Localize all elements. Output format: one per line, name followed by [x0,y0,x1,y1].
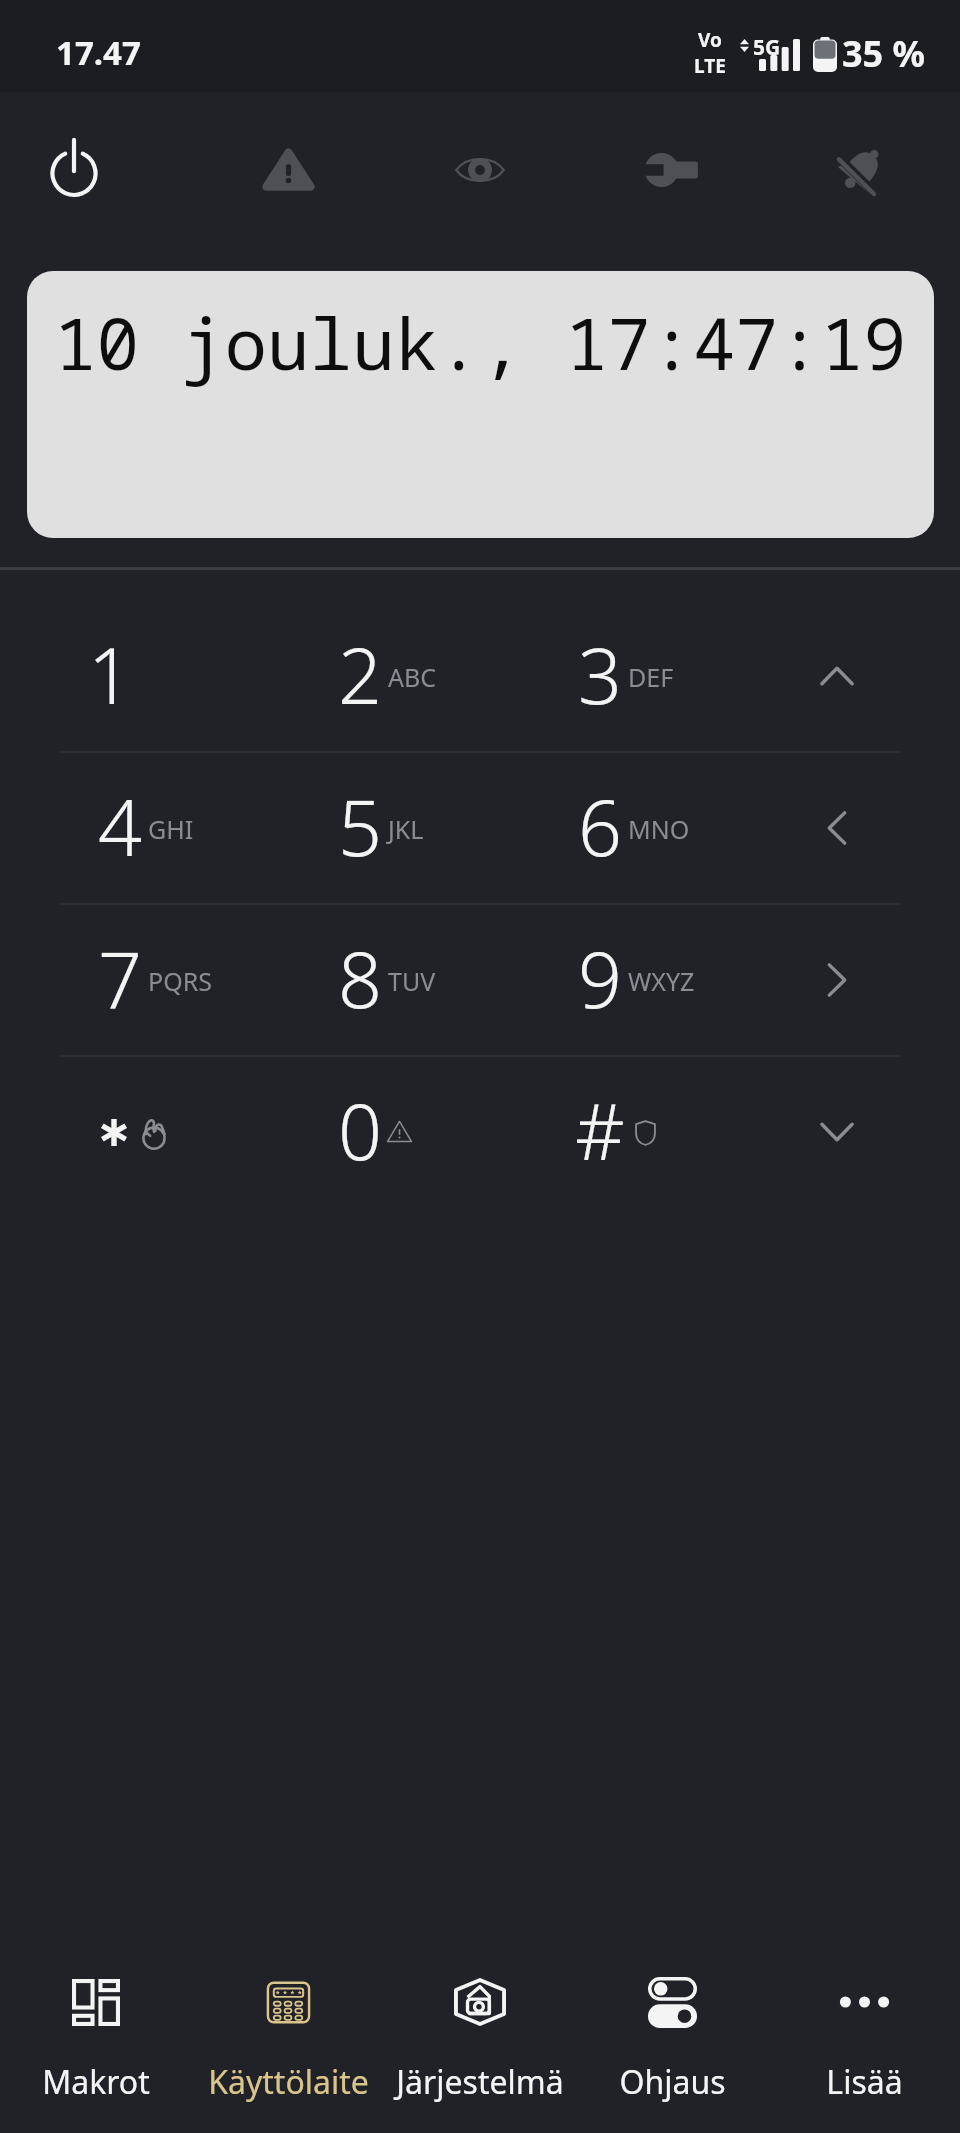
staticText: Vo [698,27,722,53]
button[interactable]: Move left [720,752,960,904]
button[interactable]: Move right [720,904,960,1056]
button[interactable]: Käyttölaite [192,1945,384,2115]
button[interactable]: # [480,1056,720,1208]
button[interactable]: 6 [480,752,720,904]
staticText: 10 jouluk., 17:47:19 [54,294,907,391]
staticText: 35 % [842,29,926,78]
button[interactable]: 9 [480,904,720,1056]
staticText: 4 [98,774,142,879]
staticText: ABC [388,660,437,694]
button[interactable]: 1 [0,600,240,752]
button[interactable]: 5 [240,752,480,904]
button[interactable]: 0 [240,1056,480,1208]
staticText: # [575,1078,625,1183]
staticText: 3 [578,622,622,727]
button[interactable]: Scroll down [720,1056,960,1208]
button[interactable]: Notifications off [815,122,911,218]
staticText: LTE [694,53,726,79]
button[interactable]: Warnings [240,122,336,218]
staticText: 6 [578,774,622,879]
staticText: Makrot [42,2060,150,2104]
button[interactable]: Makrot [0,1945,192,2115]
staticText: DEF [628,660,674,694]
staticText: Järjestelmä [396,2060,564,2104]
staticText: PQRS [148,964,212,998]
staticText: 5G [753,33,781,62]
staticText: Lisää [826,2060,903,2104]
button[interactable]: Järjestelmä [384,1945,576,2115]
button[interactable]: 10 jouluk., 17:47:19 [27,271,934,538]
staticText: 0 [338,1078,382,1183]
button[interactable]: 7 [0,904,240,1056]
staticText: 1 [88,622,132,727]
staticText: 17.47 [56,30,141,75]
button[interactable]: Visibility [432,122,528,218]
staticText: 8 [338,926,382,1031]
button[interactable]: Ohjaus [576,1945,768,2115]
button[interactable]: 8 [240,904,480,1056]
staticText: Käyttölaite [208,2060,369,2104]
staticText: Ohjaus [619,2060,726,2104]
staticText: WXYZ [628,964,695,998]
button[interactable]: Tools [623,122,719,218]
button[interactable]: 2 [240,600,480,752]
staticText: MNO [628,812,690,846]
button[interactable]: 3 [480,600,720,752]
staticText: GHI [148,812,194,846]
button[interactable]: Scroll up [720,600,960,752]
button[interactable]: Lisää [768,1945,960,2115]
staticText: JKL [388,812,424,846]
staticText: TUV [388,964,436,998]
staticText: 9 [578,926,622,1031]
button[interactable]: 4 [0,752,240,904]
button[interactable]: Star key [0,1056,240,1208]
staticText: 2 [338,622,382,727]
button[interactable]: Power [26,122,122,218]
staticText: 5 [338,774,382,879]
staticText: 7 [98,926,142,1031]
